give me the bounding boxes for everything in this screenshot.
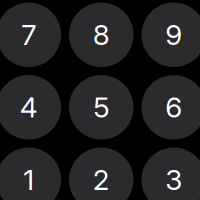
button[interactable]: 8: [69, 2, 133, 67]
staticText: 2: [93, 163, 110, 197]
button[interactable]: 3: [141, 148, 200, 200]
button[interactable]: 4: [0, 75, 61, 139]
button[interactable]: 6: [141, 75, 200, 139]
staticText: 3: [165, 163, 182, 197]
staticText: 9: [165, 18, 182, 52]
staticText: 5: [93, 90, 109, 124]
staticText: 6: [165, 90, 182, 124]
staticText: 8: [93, 18, 110, 52]
staticText: 4: [20, 90, 38, 124]
button[interactable]: 9: [141, 2, 200, 67]
button[interactable]: 1: [0, 148, 61, 200]
staticText: 7: [21, 18, 36, 52]
button[interactable]: 2: [69, 148, 133, 200]
button[interactable]: 5: [69, 75, 133, 139]
button[interactable]: 7: [0, 2, 61, 67]
staticText: 1: [23, 163, 34, 197]
